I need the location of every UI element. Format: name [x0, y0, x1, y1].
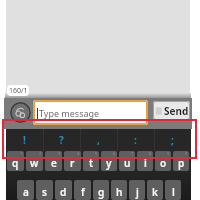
button[interactable]: Type message	[33, 100, 148, 125]
button[interactable]: !	[6, 129, 43, 151]
staticText: f	[81, 185, 85, 199]
button[interactable]: :	[117, 129, 154, 151]
staticText: Send	[164, 104, 189, 118]
button[interactable]: 2	[26, 151, 43, 171]
staticText: 6	[113, 151, 116, 156]
button[interactable]: Send	[153, 101, 190, 120]
button[interactable]: 4	[64, 151, 81, 171]
staticText: 160/1	[9, 86, 28, 96]
staticText: q	[12, 156, 19, 170]
staticText: d	[60, 185, 67, 199]
staticText: e	[51, 156, 57, 170]
staticText: ,	[97, 133, 100, 147]
staticText: 4	[77, 151, 80, 156]
staticText: 1	[20, 151, 23, 156]
staticText: 3	[58, 151, 61, 156]
button[interactable]: 7	[119, 151, 135, 171]
button[interactable]: ;	[154, 129, 191, 151]
staticText: ?	[59, 133, 64, 147]
button[interactable]: h	[111, 180, 127, 200]
staticText: a	[23, 185, 29, 199]
staticText: y	[106, 156, 112, 170]
staticText: r	[70, 156, 75, 170]
staticText: ;	[171, 133, 174, 147]
staticText: 5	[95, 151, 98, 156]
button[interactable]: k	[147, 180, 163, 200]
button[interactable]: 1	[7, 151, 24, 171]
button[interactable]: ?	[43, 129, 80, 151]
staticText: o	[160, 156, 167, 170]
staticText: 9	[167, 151, 170, 156]
button[interactable]: 5	[83, 151, 99, 171]
staticText: h	[116, 185, 123, 199]
staticText: 8	[149, 151, 152, 156]
staticText: p	[178, 156, 185, 170]
button[interactable]: g	[93, 180, 109, 200]
button[interactable]: ,	[80, 129, 117, 151]
staticText: :	[134, 133, 137, 147]
staticText: 0	[185, 151, 188, 156]
button[interactable]: s	[36, 180, 53, 200]
button[interactable]: f	[74, 180, 91, 200]
staticText: k	[152, 185, 158, 199]
staticText: t	[89, 156, 94, 170]
button[interactable]: 3	[45, 151, 62, 171]
button[interactable]: 0	[173, 151, 189, 171]
staticText: u	[124, 156, 131, 170]
button[interactable]: j	[129, 180, 145, 200]
staticText: Type message	[39, 107, 100, 119]
staticText: w	[30, 156, 39, 170]
staticText: i	[144, 156, 147, 170]
staticText: s	[42, 185, 47, 199]
button[interactable]: l	[165, 180, 181, 200]
button[interactable]: d	[55, 180, 72, 200]
button[interactable]: 9	[155, 151, 171, 171]
button[interactable]: 6	[101, 151, 117, 171]
button[interactable]: a	[17, 180, 34, 200]
button[interactable]: 160/1	[7, 85, 29, 96]
staticText: g	[98, 185, 105, 199]
staticText: !	[23, 133, 26, 147]
staticText: 2	[39, 151, 42, 156]
button[interactable]: 8	[137, 151, 153, 171]
staticText: 7	[131, 151, 134, 156]
staticText: j	[136, 185, 139, 199]
staticText: l	[172, 185, 175, 199]
button[interactable]: Insert emoji	[10, 102, 31, 123]
